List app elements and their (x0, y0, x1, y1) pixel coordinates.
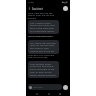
button[interactable]: Can I export these results into a PDF an… (28, 20, 59, 34)
button[interactable]: Yes. Open the overflow menu in the top r… (28, 40, 59, 54)
staticText: Assistant (32, 7, 43, 10)
staticText: That worked nicely. Could you also add a… (30, 62, 57, 77)
button[interactable]: Recents (58, 92, 61, 95)
staticText: 11:48 (28, 1, 34, 4)
button[interactable]: Profile (63, 6, 68, 11)
staticText: ● ▲ ▮ (62, 1, 68, 4)
staticText: Can I export these results into a PDF an… (30, 21, 57, 33)
button[interactable]: Message (28, 84, 62, 90)
staticText: Message (33, 86, 43, 89)
staticText: Thanks! I'll try that now and let you kn… (28, 53, 58, 59)
staticText: https://example.com/r (28, 34, 54, 37)
button[interactable]: That worked nicely. Could you also add a… (28, 61, 59, 78)
staticText: Sure, here are the key points from the f… (28, 11, 58, 20)
button[interactable]: Send (63, 85, 68, 90)
button[interactable]: Back (27, 6, 32, 11)
button[interactable]: Back (35, 92, 38, 95)
staticText: Yes. Open the overflow menu in the top r… (30, 41, 57, 53)
button[interactable]: Home (47, 92, 50, 95)
